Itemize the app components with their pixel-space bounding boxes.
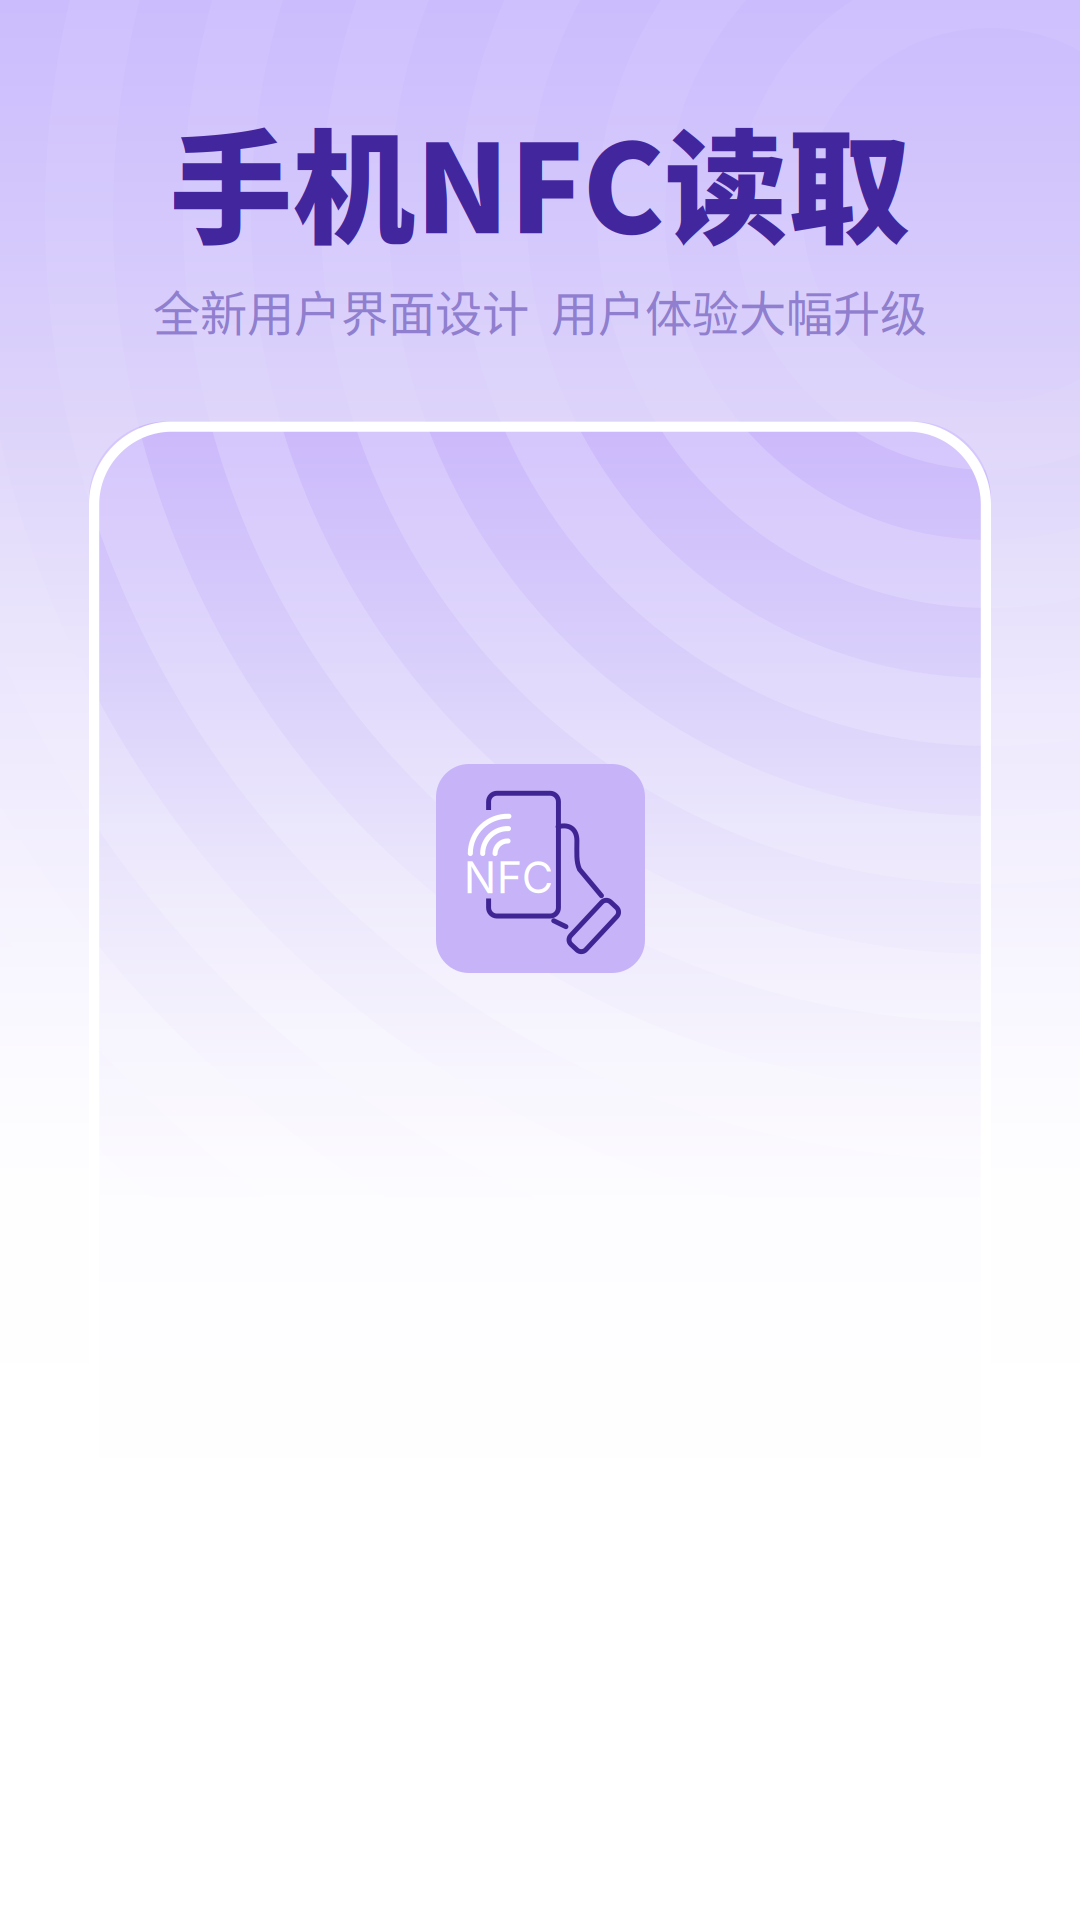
staticText: 全新用户界面设计 用户体验大幅升级 bbox=[153, 277, 927, 345]
staticText: NFC bbox=[464, 851, 554, 904]
staticText: 手机NFC读取 bbox=[169, 91, 910, 269]
